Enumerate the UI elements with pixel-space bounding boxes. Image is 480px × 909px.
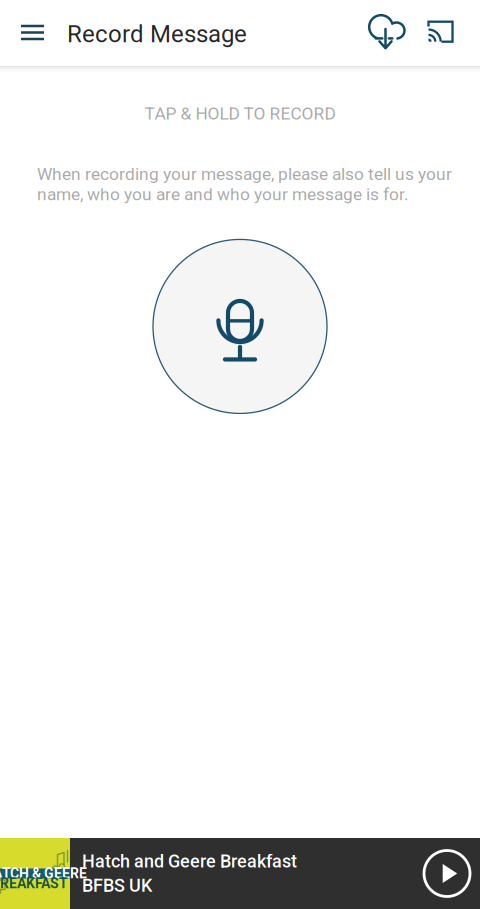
button[interactable]: Cast xyxy=(418,9,464,55)
button[interactable]: Download xyxy=(359,7,409,57)
staticText: Hatch and Geere Breakfast xyxy=(82,851,297,872)
staticText: When recording your message, please also… xyxy=(37,164,452,204)
button[interactable]: Record xyxy=(153,239,327,413)
button[interactable]: Menu xyxy=(9,9,55,55)
staticText: Record Message xyxy=(67,20,247,48)
staticText: BREAKFAST xyxy=(0,875,68,892)
button[interactable]: Play xyxy=(422,848,480,898)
staticText: BFBS UK xyxy=(82,875,152,896)
staticText: TAP & HOLD TO RECORD xyxy=(144,103,335,124)
staticText: HATCH & GEERE xyxy=(0,865,87,882)
